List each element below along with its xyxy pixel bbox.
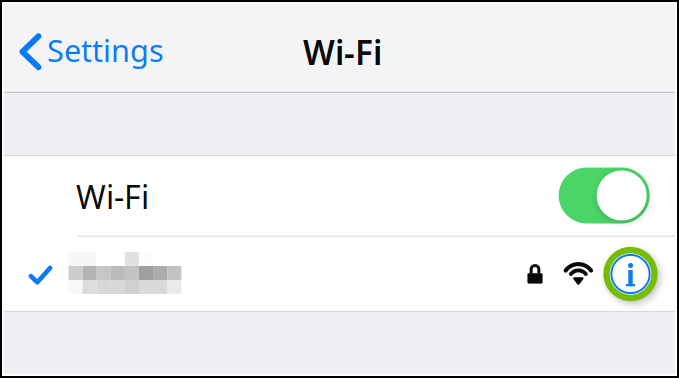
button[interactable] [4,237,675,312]
staticText: Wi-Fi [303,30,382,74]
button[interactable]: Settings [4,4,176,93]
staticText: Settings [47,30,164,70]
button[interactable]: Wi-Fi [4,156,675,237]
staticText: Wi-Fi [76,175,149,218]
button[interactable]: Wi-Fi [559,167,650,223]
button[interactable]: More Info [602,246,658,302]
